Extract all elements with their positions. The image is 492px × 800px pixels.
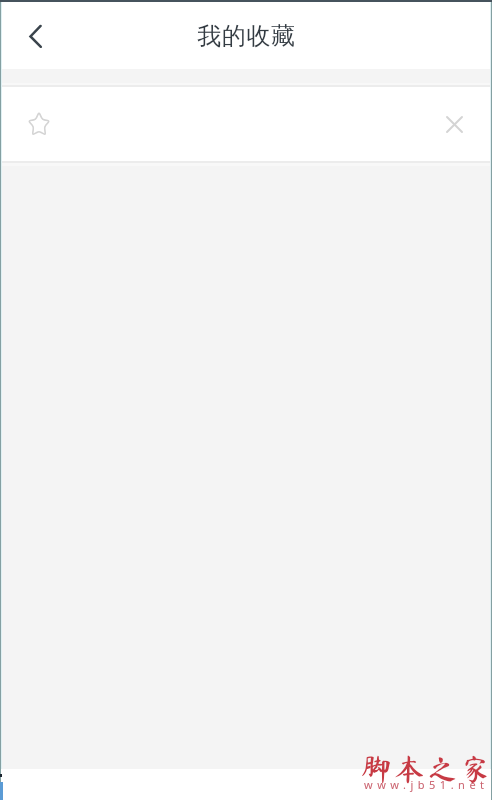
button[interactable]: Back: [0, 3, 68, 69]
staticText: 我的收藏: [197, 21, 296, 51]
button[interactable]: Remove: [0, 87, 492, 161]
button[interactable]: Remove: [432, 102, 476, 146]
staticText: www.jb51.net: [364, 777, 489, 792]
staticText: 脚本之家: [361, 754, 492, 784]
